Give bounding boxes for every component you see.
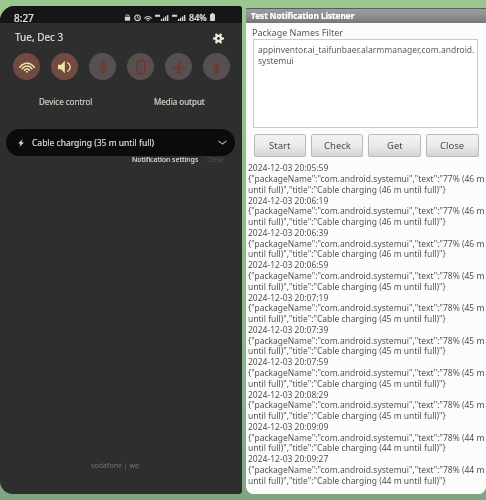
button[interactable]: Get	[368, 134, 421, 157]
staticText: {"packageName":"com.android.systemui","t…	[248, 367, 485, 379]
button[interactable]: Check	[311, 134, 363, 157]
button[interactable]: Start	[254, 134, 306, 157]
staticText: Device control	[39, 96, 93, 107]
button[interactable]: Close	[426, 134, 479, 157]
staticText: Clear	[207, 155, 224, 165]
staticText: {"packageName":"com.android.systemui","t…	[248, 464, 485, 476]
staticText: 2024-12-03 20:06:19	[248, 195, 329, 207]
staticText: until full)","title":"Cable charging (44…	[248, 442, 446, 454]
staticText: appinventor.ai_taifunbaer.alarmmanager,c…	[258, 44, 475, 66]
staticText: Tue, Dec 3	[15, 30, 64, 44]
staticText: {"packageName":"com.android.systemui","t…	[248, 173, 485, 185]
staticText: Cable charging (35 m until full)	[32, 137, 155, 149]
staticText: until full)","title":"Cable charging (45…	[248, 345, 446, 357]
staticText: 84%	[189, 11, 207, 23]
staticText: 2024-12-03 20:05:59	[248, 162, 329, 174]
staticText: until full)","title":"Cable charging (45…	[248, 410, 446, 422]
staticText: 8:27	[14, 11, 34, 25]
staticText: {"packageName":"com.android.systemui","t…	[248, 335, 485, 347]
button[interactable]: Cable charging (35 m until full)	[6, 129, 235, 156]
staticText: Test Notification Listener	[251, 10, 355, 21]
staticText: 2024-12-03 20:07:59	[248, 356, 329, 368]
button[interactable]: Quick settings	[207, 27, 229, 49]
button[interactable]: Wi-Fi	[13, 53, 40, 80]
staticText: until full)","title":"Cable charging (46…	[248, 248, 446, 260]
button[interactable]: Notification settings	[130, 153, 201, 167]
staticText: {"packageName":"com.android.systemui","t…	[248, 205, 485, 217]
staticText: Close	[440, 139, 465, 152]
staticText: 2024-12-03 20:07:19	[248, 292, 329, 304]
button[interactable]: Media output	[129, 94, 229, 108]
button[interactable]: Airplane mode	[165, 53, 192, 80]
button[interactable]: Clear	[205, 153, 226, 167]
staticText: Start	[269, 139, 291, 152]
button[interactable]: appinventor.ai_taifunbaer.alarmmanager,c…	[253, 39, 478, 128]
staticText: 2024-12-03 20:06:59	[248, 259, 329, 271]
staticText: {"packageName":"com.android.systemui","t…	[248, 302, 485, 314]
staticText: Package Names Filter	[252, 26, 344, 38]
staticText: 2024-12-03 20:08:29	[248, 389, 329, 401]
staticText: until full)","title":"Cable charging (46…	[248, 184, 446, 196]
button[interactable]: Auto rotate	[127, 53, 154, 80]
staticText: 2024-12-03 20:07:39	[248, 324, 329, 336]
staticText: until full)","title":"Cable charging (45…	[248, 313, 446, 325]
staticText: Notification settings	[132, 155, 199, 165]
staticText: until full)","title":"Cable charging (45…	[248, 378, 446, 390]
staticText: until full)","title":"Cable charging (46…	[248, 216, 446, 228]
staticText: Get	[387, 139, 403, 152]
staticText: until full)","title":"Cable charging (44…	[248, 475, 446, 487]
button[interactable]: Device control	[16, 94, 116, 108]
button[interactable]: Flashlight	[203, 53, 230, 80]
staticText: {"packageName":"com.android.systemui","t…	[248, 399, 485, 411]
staticText: 2024-12-03 20:06:39	[248, 227, 329, 239]
staticText: until full)","title":"Cable charging (45…	[248, 281, 446, 293]
button[interactable]: Bluetooth	[89, 53, 116, 80]
staticText: 2024-12-03 20:09:09	[248, 421, 329, 433]
staticText: Check	[324, 139, 351, 152]
button[interactable]: Sound	[51, 53, 78, 80]
staticText: {"packageName":"com.android.systemui","t…	[248, 238, 485, 250]
staticText: 2024-12-03 20:09:27	[248, 453, 329, 465]
staticText: vodafone | we	[91, 461, 139, 471]
staticText: Media output	[154, 96, 205, 107]
staticText: {"packageName":"com.android.systemui","t…	[248, 432, 485, 444]
staticText: {"packageName":"com.android.systemui","t…	[248, 270, 485, 282]
